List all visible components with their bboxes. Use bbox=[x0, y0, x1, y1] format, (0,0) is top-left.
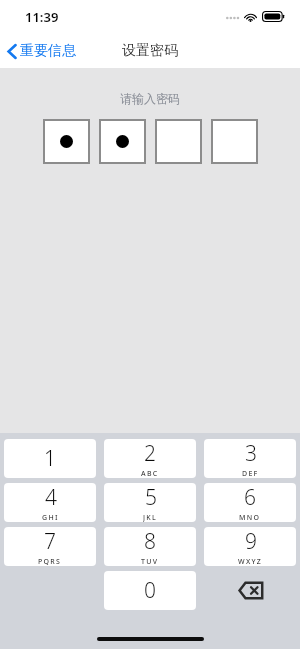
button[interactable]: 1 bbox=[4, 439, 96, 478]
staticText: 6 bbox=[244, 483, 256, 512]
staticText: 重要信息 bbox=[20, 42, 76, 60]
button[interactable]: 9 bbox=[204, 527, 296, 566]
staticText: GHI bbox=[42, 513, 59, 522]
button[interactable]: Delete bbox=[221, 571, 279, 610]
button[interactable]: 8 bbox=[104, 527, 196, 566]
staticText: MNO bbox=[239, 513, 261, 522]
staticText: ABC bbox=[141, 469, 159, 478]
staticText: 7 bbox=[44, 527, 56, 556]
staticText: 9 bbox=[245, 527, 257, 556]
button[interactable]: 3 bbox=[204, 439, 296, 478]
staticText: PQRS bbox=[38, 557, 62, 566]
staticText: WXYZ bbox=[238, 557, 263, 566]
staticText: 3 bbox=[245, 439, 257, 468]
button[interactable]: 5 bbox=[104, 483, 196, 522]
staticText: 11:39 bbox=[25, 8, 59, 26]
staticText: DEF bbox=[242, 469, 259, 478]
staticText: 8 bbox=[144, 527, 156, 556]
staticText: 请输入密码 bbox=[0, 91, 300, 106]
staticText: TUV bbox=[141, 557, 159, 566]
button[interactable]: 2 bbox=[104, 439, 196, 478]
staticText: 4 bbox=[45, 483, 57, 512]
staticText: 0 bbox=[144, 576, 156, 605]
button[interactable]: 6 bbox=[204, 483, 296, 522]
staticText: 设置密码 bbox=[122, 42, 178, 60]
button[interactable] bbox=[101, 121, 144, 162]
staticText: 2 bbox=[144, 439, 156, 468]
button[interactable]: 重要信息 bbox=[0, 37, 84, 65]
button[interactable]: 7 bbox=[4, 527, 96, 566]
staticText: JKL bbox=[143, 513, 158, 522]
button[interactable]: 4 bbox=[4, 483, 96, 522]
button[interactable] bbox=[45, 121, 88, 162]
staticText: 5 bbox=[145, 483, 157, 512]
staticText: 1 bbox=[44, 444, 56, 473]
button[interactable]: 0 bbox=[104, 571, 196, 610]
